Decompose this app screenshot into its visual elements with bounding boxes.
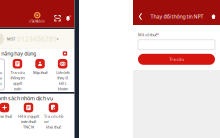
staticText: Danh sách nhóm dịch vụ (0, 95, 53, 102)
button[interactable]: Quét mã QR (54, 15, 61, 22)
button[interactable]: Tra cứu (0, 59, 4, 90)
staticText: toán thuế (21, 119, 36, 124)
button[interactable]: Hỗ trợ quyết (17, 103, 40, 134)
staticText: Tra cứu (0, 70, 2, 75)
staticText: quyết (13, 80, 22, 86)
staticText: thay đ. (57, 75, 68, 80)
staticText: 0123456789 (17, 35, 57, 43)
staticText: nộp phụ (0, 80, 1, 86)
staticText: Thay đổi thông tin NPT (150, 13, 203, 20)
button[interactable]: Nộp thuế (31, 59, 50, 90)
staticText: * (157, 32, 159, 37)
staticText: Hỗ trợ quyết (18, 113, 39, 119)
staticText: Chức năng hay dùng (0, 50, 36, 57)
staticText: khoản (58, 86, 68, 91)
staticText: nghĩa vụ (0, 75, 2, 80)
staticText: Khai thuế (0, 113, 12, 119)
button[interactable]: Chỉnh sửa chức năng (63, 51, 67, 56)
staticText: Nộp thuế (33, 70, 48, 75)
staticText: Tra cứu hồ sơ (44, 113, 63, 124)
staticText: Liên kết (56, 70, 69, 75)
staticText: MST (7, 36, 15, 42)
staticText: toán (14, 86, 21, 91)
button[interactable]: Tra cứu (8, 59, 27, 90)
button[interactable]: Trang chủ (210, 12, 217, 21)
button[interactable]: Thông báo (64, 15, 71, 22)
button[interactable]: MST (0, 29, 74, 49)
button[interactable]: Quay lại (137, 12, 144, 21)
button[interactable]: Tra cứu hồ sơ (42, 103, 65, 134)
staticText: TNCN (23, 124, 34, 130)
staticText: Mã số thuế (138, 32, 157, 37)
staticText: kết t. (59, 80, 67, 86)
button[interactable]: Khai thuế (0, 103, 15, 134)
staticText: eTax Mobile (29, 20, 45, 23)
staticText: Tra cứu (169, 57, 183, 62)
button[interactable]: Liên kết (53, 59, 72, 90)
staticText: thông tin (10, 75, 24, 80)
staticText: Tra cứu (10, 70, 24, 75)
button[interactable]: Tra cứu (138, 54, 215, 65)
staticText: khai thuế (46, 124, 61, 129)
